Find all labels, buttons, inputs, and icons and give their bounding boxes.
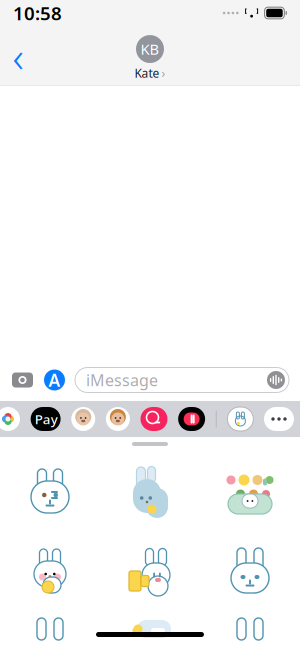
button[interactable]: Bunny sticker <box>22 618 78 640</box>
button[interactable]: Sticker pack <box>227 407 253 431</box>
button[interactable]: Photos <box>0 407 20 431</box>
button[interactable]: Memoji <box>71 407 95 431</box>
staticText: KB <box>140 39 159 59</box>
button[interactable]: Sleepy bunny sticker <box>222 542 278 598</box>
button[interactable]: Salad bowl bunny sticker <box>222 462 278 518</box>
button[interactable]: App Store <box>43 368 66 391</box>
staticText: Kate <box>134 65 159 81</box>
button[interactable]: KB <box>134 31 165 81</box>
button[interactable]: Apple Pay <box>31 407 61 431</box>
button[interactable]: Happy bunny sticker <box>22 542 78 598</box>
button[interactable]: Bunny sticker <box>222 618 278 640</box>
staticText: iMessage <box>86 369 158 391</box>
button[interactable]: Bandage bunny sticker <box>22 462 78 518</box>
button[interactable]: Images <box>140 407 167 431</box>
staticText: A <box>48 368 60 391</box>
staticText: 10:58 <box>13 1 62 25</box>
button[interactable]: Back <box>0 34 36 78</box>
button[interactable]: Record audio message <box>266 370 286 390</box>
button[interactable]: Camera <box>11 370 34 390</box>
button[interactable]: Digital Touch <box>178 407 205 431</box>
staticText: Pay <box>35 410 58 428</box>
button[interactable]: Memoji Stickers <box>106 407 130 431</box>
button[interactable]: Megaphone bunny sticker <box>122 542 178 598</box>
staticText: › <box>161 65 165 81</box>
staticText: ‹ <box>12 28 23 84</box>
button[interactable]: More apps <box>264 407 294 431</box>
button[interactable]: Blue bunny sticker <box>122 462 178 518</box>
button[interactable]: Star bunny sticker <box>122 618 178 640</box>
